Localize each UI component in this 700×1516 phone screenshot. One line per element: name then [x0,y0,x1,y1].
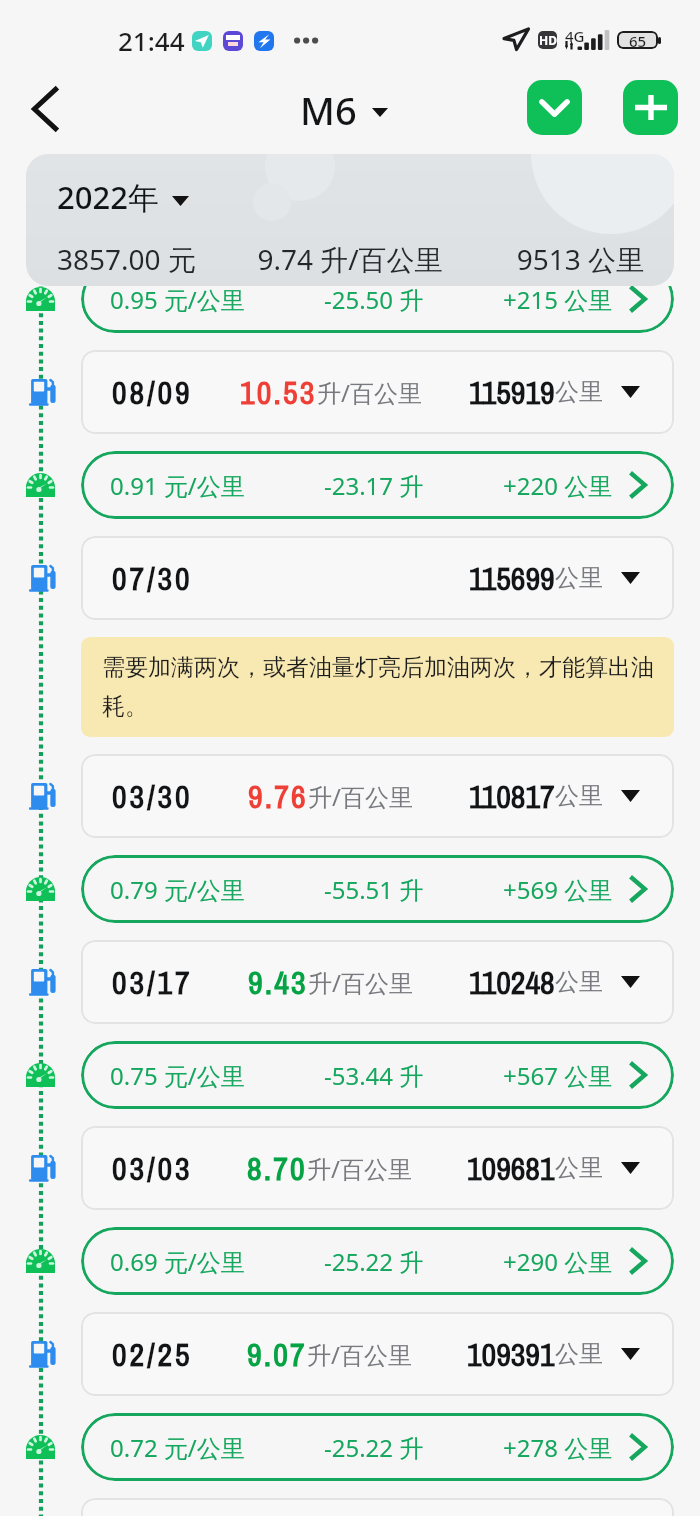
staticText: 公里 [555,967,603,997]
button[interactable]: 03/17 [81,940,674,1024]
staticText: 110248 [469,961,555,1004]
staticText: 需要加满两次，或者油量灯亮后加油两次，才能算出油耗。 [102,653,655,721]
staticText: 02/25 [112,1333,193,1376]
staticText: 9.43 [248,961,308,1004]
button[interactable] [81,1498,674,1516]
button[interactable]: 0.75 元/公里 [81,1041,674,1109]
staticText: 公里 [555,563,603,593]
staticText: 升/百公里 [308,966,413,999]
staticText: +569 公里 [503,873,613,906]
button[interactable]: 2022年 [26,154,674,286]
staticText: 升/百公里 [308,780,413,813]
staticText: 115699 [469,557,555,600]
staticText: -25.22 升 [324,1431,424,1464]
staticText: -25.22 升 [324,1245,424,1278]
button[interactable]: Expand [527,80,582,135]
staticText: 109391 [467,1333,555,1376]
staticText: -55.51 升 [324,873,424,906]
button[interactable]: 0.95 元/公里 [81,265,674,333]
staticText: 公里 [555,1339,603,1369]
button[interactable]: Add [623,80,678,135]
staticText: +567 公里 [503,1059,613,1092]
staticText: 公里 [555,1153,603,1183]
button[interactable]: 0.72 元/公里 [81,1413,674,1481]
staticText: 0.79 元/公里 [110,873,245,906]
staticText: -53.44 升 [324,1059,424,1092]
staticText: M6 [300,84,357,136]
staticText: +215 公里 [503,283,613,316]
staticText: 08/09 [112,371,193,414]
staticText: 9.07 [247,1333,307,1376]
staticText: 03/03 [112,1147,193,1190]
staticText: 3857.00 元 [57,240,252,278]
button[interactable]: Back [17,81,73,137]
button[interactable]: 0.91 元/公里 [81,451,674,519]
button[interactable]: 0.69 元/公里 [81,1227,674,1295]
staticText: 21:44 [118,23,185,58]
staticText: -23.17 升 [324,469,424,502]
button[interactable]: 02/25 [81,1312,674,1396]
staticText: -25.50 升 [324,283,424,316]
staticText: 9.76 [248,775,308,818]
staticText: 10.53 [240,371,317,414]
button[interactable]: 需要加满两次，或者油量灯亮后加油两次，才能算出油耗。 [81,637,674,737]
staticText: 115919 [469,371,555,414]
button[interactable]: 03/03 [81,1126,674,1210]
staticText: +278 公里 [503,1431,613,1464]
staticText: 2022年 [57,176,159,218]
staticText: 升/百公里 [317,376,422,409]
staticText: 0.91 元/公里 [110,469,245,502]
staticText: 4G [565,26,585,46]
staticText: 公里 [555,781,603,811]
staticText: 0.72 元/公里 [110,1431,245,1464]
button[interactable]: 07/30 [81,536,674,620]
button[interactable]: 0.79 元/公里 [81,855,674,923]
button[interactable]: 08/09 [81,350,674,434]
staticText: HD [539,32,557,48]
staticText: 0.95 元/公里 [110,283,245,316]
staticText: 65 [629,31,647,49]
button[interactable]: 03/30 [81,754,674,838]
staticText: 9.74 升/百公里 [252,240,448,278]
staticText: 8.70 [247,1147,307,1190]
staticText: 9513 公里 [448,240,644,278]
staticText: 03/30 [112,775,193,818]
staticText: +220 公里 [503,469,613,502]
staticText: 109681 [467,1147,555,1190]
staticText: 07/30 [112,557,193,600]
staticText: 升/百公里 [307,1338,412,1371]
staticText: 0.69 元/公里 [110,1245,245,1278]
staticText: 110817 [469,775,555,818]
button[interactable]: M6 [300,84,388,136]
staticText: 03/17 [112,961,193,1004]
staticText: 升/百公里 [307,1152,412,1185]
staticText: 公里 [555,377,603,407]
staticText: +290 公里 [503,1245,613,1278]
staticText: 0.75 元/公里 [110,1059,245,1092]
